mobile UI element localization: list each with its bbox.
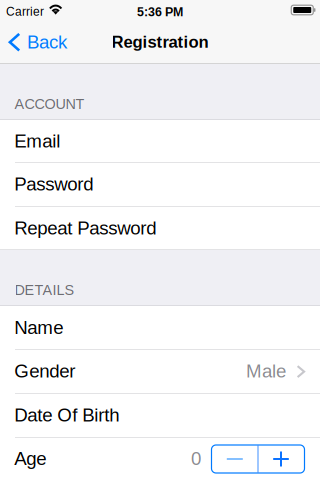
staticText: Date Of Birth xyxy=(14,405,119,425)
staticText: Email xyxy=(14,131,60,151)
staticText: Gender xyxy=(14,361,75,381)
staticText: Age xyxy=(14,448,46,469)
staticText: Back xyxy=(27,32,67,52)
staticText: Carrier xyxy=(6,5,44,18)
staticText: 5:36 PM xyxy=(137,5,183,19)
button[interactable]: Decrease xyxy=(211,445,258,473)
staticText: 0 xyxy=(191,448,201,469)
staticText: Name xyxy=(14,317,63,338)
button[interactable]: Male xyxy=(0,349,320,393)
staticText: ACCOUNT xyxy=(15,96,85,112)
staticText: Registration xyxy=(111,33,208,51)
staticText: DETAILS xyxy=(15,282,75,298)
button[interactable]: Back xyxy=(0,20,90,64)
staticText: Male xyxy=(246,361,286,381)
button[interactable]: Increase xyxy=(258,445,304,473)
staticText: Password xyxy=(14,174,93,194)
staticText: Repeat Password xyxy=(14,218,156,238)
